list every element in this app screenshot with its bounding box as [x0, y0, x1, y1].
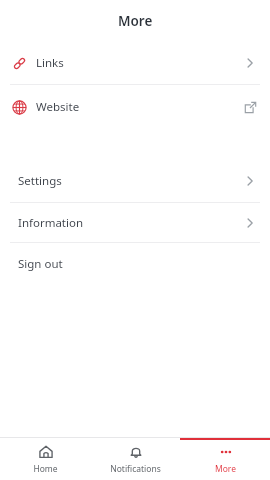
staticText: Settings	[18, 173, 62, 189]
staticText: More	[118, 12, 153, 30]
staticText: Links	[36, 55, 64, 71]
staticText: Sign out	[18, 256, 63, 272]
other: Open	[244, 217, 256, 229]
other: Open	[244, 57, 256, 69]
button[interactable]: Notifications	[90, 438, 180, 480]
staticText: Notifications	[110, 463, 161, 475]
staticText: Information	[18, 215, 84, 231]
staticText: Website	[36, 99, 80, 115]
other: Open website in browser	[244, 101, 257, 114]
button[interactable]: More	[180, 438, 270, 480]
staticText: Home	[33, 463, 58, 475]
button[interactable]: Links	[0, 42, 270, 84]
staticText: More	[215, 463, 236, 475]
button[interactable]: Settings	[0, 160, 270, 202]
button[interactable]: Information	[0, 203, 270, 242]
other: More	[218, 444, 234, 460]
button[interactable]: Website	[0, 85, 270, 128]
button[interactable]: Home	[0, 438, 90, 480]
other: Open	[244, 175, 256, 187]
button[interactable]: Sign out	[0, 243, 270, 285]
